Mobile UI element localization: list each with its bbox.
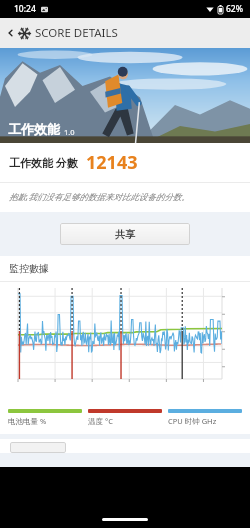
button[interactable]: 共享 (60, 223, 190, 245)
staticText: 共享 (115, 228, 135, 241)
staticText: 監控數據 (9, 262, 49, 275)
button[interactable]: Back (4, 26, 18, 40)
staticText: SCORE DETAILS (35, 25, 118, 41)
staticText: 10:24 (14, 3, 36, 15)
button[interactable]: More (10, 442, 66, 453)
staticText: 温度 °C (88, 416, 113, 426)
staticText: 12143 (86, 150, 138, 175)
staticText: 工作效能 分數 (9, 155, 78, 170)
staticText: CPU 时钟 GHz (168, 416, 217, 426)
staticText: 1.0 (64, 127, 75, 137)
staticText: 电池电量 % (8, 416, 47, 426)
staticText: 抱歉,我们没有足够的数据来对比此设备的分数。 (9, 191, 190, 203)
staticText: 62% (226, 3, 243, 15)
staticText: 工作效能 (8, 121, 60, 137)
